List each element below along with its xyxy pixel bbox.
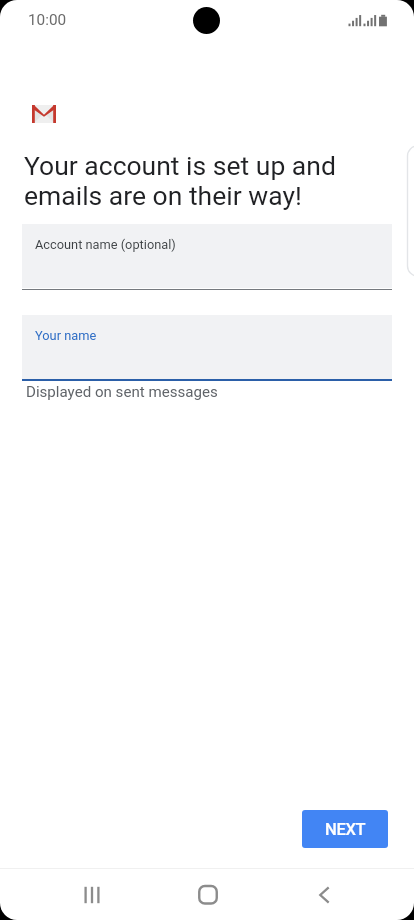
button[interactable]: NEXT [302,810,388,848]
staticText: Your account is set up and emails are on… [24,150,372,211]
button[interactable]: Your name [22,315,392,379]
button[interactable]: Recent apps [54,869,130,920]
button[interactable]: Back [286,869,362,920]
button[interactable]: Account name (optional) [22,224,392,288]
staticText: Account name (optional) [35,237,176,252]
staticText: Your name [35,328,97,343]
staticText: 10:00 [28,11,67,29]
staticText: NEXT [325,820,366,839]
button[interactable]: Home [170,869,246,920]
staticText: Displayed on sent messages [26,383,218,401]
